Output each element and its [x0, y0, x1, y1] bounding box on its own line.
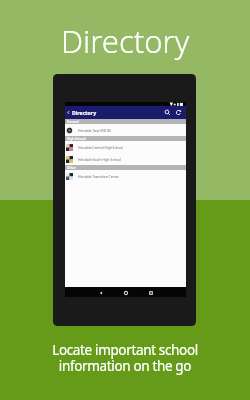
- staticText: Directory: [72, 109, 97, 116]
- button[interactable]: Back: [95, 288, 106, 297]
- staticText: Hinsdale Twp HSD 86: [78, 128, 111, 132]
- staticText: High Schools: [67, 137, 87, 141]
- button[interactable]: Home: [120, 288, 131, 297]
- staticText: Other: [67, 166, 76, 170]
- button[interactable]: Recent apps: [145, 288, 156, 297]
- button[interactable]: Hinsdale South High School: [65, 153, 186, 165]
- button[interactable]: Hinsdale Transition Center: [65, 170, 186, 182]
- button[interactable]: Hinsdale Twp HSD 86: [65, 124, 186, 136]
- staticText: Directory: [61, 20, 190, 62]
- staticText: Hinsdale Transition Center: [78, 174, 119, 178]
- button[interactable]: Refresh: [174, 108, 183, 117]
- button[interactable]: Hinsdale Central High School: [65, 141, 186, 153]
- staticText: Hinsdale South High School: [78, 157, 121, 161]
- staticText: Hinsdale Central High School: [78, 145, 123, 149]
- staticText: General: [67, 120, 79, 124]
- button[interactable]: Back: [66, 110, 71, 115]
- staticText: Locate important school information on t…: [52, 341, 198, 375]
- button[interactable]: Search: [163, 108, 172, 117]
